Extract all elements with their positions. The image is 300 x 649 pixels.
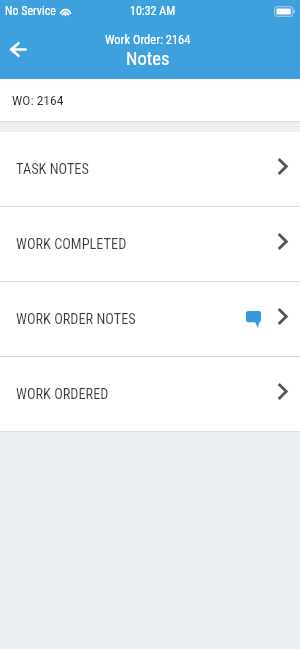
button[interactable]: WORK ORDERED: [0, 357, 300, 431]
staticText: WORK ORDERED: [16, 386, 109, 403]
button[interactable]: TASK NOTES: [0, 132, 300, 206]
staticText: WO: 2164: [12, 92, 64, 108]
staticText: Work Order: 2164: [105, 32, 191, 47]
button[interactable]: WORK COMPLETED: [0, 207, 300, 281]
staticText: WORK ORDER NOTES: [16, 311, 136, 328]
button[interactable]: Back: [2, 33, 34, 65]
staticText: Notes: [126, 48, 170, 70]
staticText: 10:32 AM: [130, 4, 176, 18]
staticText: No Service: [5, 4, 56, 18]
staticText: WORK COMPLETED: [16, 236, 127, 253]
button[interactable]: WORK ORDER NOTES: [0, 282, 300, 356]
staticText: TASK NOTES: [16, 161, 89, 178]
